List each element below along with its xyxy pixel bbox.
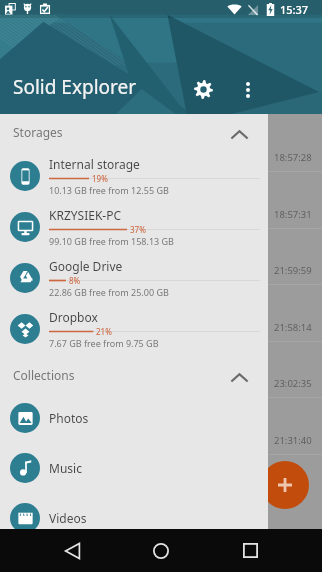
staticText: 99.10 GB free from 158.13 GB bbox=[49, 235, 174, 247]
staticText: 19% bbox=[92, 173, 108, 182]
button[interactable]: Add bbox=[261, 461, 309, 509]
staticText: 22.86 GB free from 25.00 GB bbox=[49, 286, 169, 298]
button[interactable]: Videos bbox=[0, 493, 268, 543]
staticText: Google Drive bbox=[49, 258, 123, 274]
staticText: 15:37 bbox=[280, 2, 309, 17]
button[interactable]: Internal storage bbox=[0, 150, 268, 201]
button[interactable]: Photos bbox=[0, 393, 268, 443]
button[interactable]: Settings bbox=[185, 71, 222, 108]
staticText: KRZYSIEK-PC bbox=[49, 207, 122, 223]
staticText: 10.13 GB free from 12.55 GB bbox=[49, 184, 169, 196]
button[interactable]: Google Drive bbox=[0, 252, 268, 303]
staticText: 37% bbox=[130, 224, 146, 233]
staticText: Photos bbox=[49, 410, 89, 426]
button[interactable]: Back bbox=[50, 529, 94, 572]
staticText: 8% bbox=[69, 275, 81, 284]
staticText: 21:58:14 bbox=[274, 321, 312, 334]
staticText: 21% bbox=[96, 326, 112, 335]
staticText: 21:31:40 bbox=[274, 434, 312, 447]
staticText: 7.67 GB free from 9.75 GB bbox=[49, 337, 159, 349]
staticText: 18:57:31 bbox=[274, 208, 312, 221]
button[interactable]: Music bbox=[0, 443, 268, 493]
staticText: Internal storage bbox=[49, 156, 140, 172]
button[interactable]: KRZYSIEK-PC bbox=[0, 201, 268, 252]
staticText: 18:57:28 bbox=[274, 151, 312, 164]
button[interactable]: Recents bbox=[228, 529, 272, 572]
staticText: Solid Explorer bbox=[13, 74, 137, 100]
button[interactable]: Collections bbox=[0, 357, 268, 393]
staticText: Music bbox=[49, 460, 82, 476]
staticText: Storages bbox=[13, 124, 63, 140]
button[interactable]: More options bbox=[229, 71, 266, 108]
button[interactable]: Home bbox=[139, 529, 183, 572]
staticText: 21:59:59 bbox=[274, 264, 312, 277]
staticText: 23:02:35 bbox=[274, 377, 312, 390]
staticText: Dropbox bbox=[49, 309, 98, 325]
staticText: Videos bbox=[49, 510, 87, 526]
staticText: Collections bbox=[13, 367, 75, 383]
button[interactable]: Dropbox bbox=[0, 303, 268, 354]
button[interactable]: Storages bbox=[0, 114, 268, 150]
